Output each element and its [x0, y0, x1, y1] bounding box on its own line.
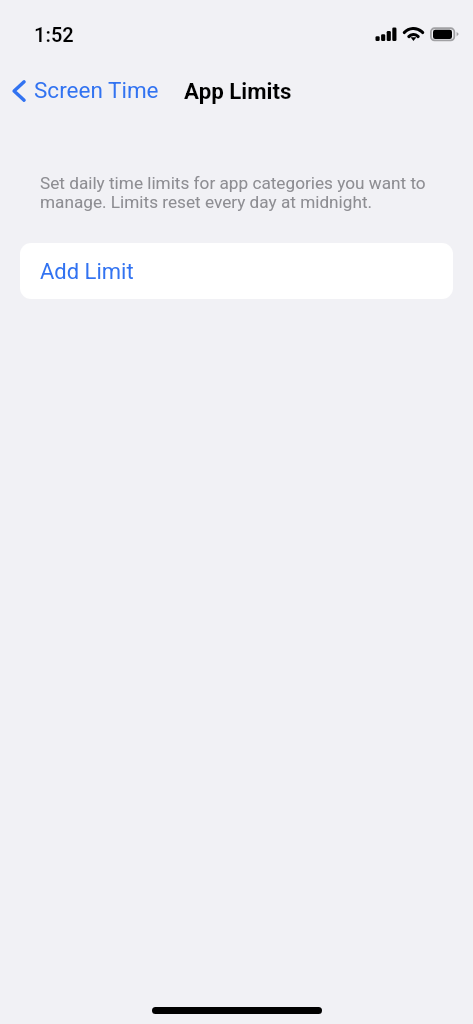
staticText: Screen Time	[34, 77, 159, 103]
other: Back	[12, 79, 26, 103]
staticText: 1:52	[34, 23, 74, 46]
button[interactable]: Back	[7, 74, 168, 109]
staticText: Add Limit	[40, 259, 134, 285]
staticText: Set daily time limits for app categories…	[40, 173, 434, 212]
staticText: App Limits	[184, 78, 292, 104]
button[interactable]: Add Limit	[20, 243, 453, 299]
other: Cellular signal, Wi-Fi, battery	[375, 26, 460, 44]
